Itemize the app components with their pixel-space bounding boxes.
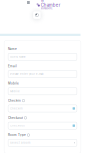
- staticText: THE: [41, 0, 44, 2]
- staticText: Check-in: [10, 107, 23, 110]
- button[interactable]: Mobile: [8, 88, 77, 95]
- staticText: Room Type: [8, 133, 26, 137]
- staticText: Please enter your E-mail: [10, 72, 44, 76]
- button[interactable]: Check-in: [8, 105, 77, 112]
- staticText: Select a room: [10, 141, 30, 144]
- staticText: Name: [8, 47, 17, 51]
- button[interactable]: Guest Name: [8, 53, 77, 60]
- button[interactable]: Select a room: [8, 139, 77, 146]
- button[interactable]: Please enter your E-mail: [8, 70, 77, 78]
- staticText: Chamber: [41, 2, 61, 8]
- staticText: Email: [8, 64, 17, 68]
- staticText: Check-out: [10, 124, 25, 127]
- button[interactable]: Menu: [27, 0, 30, 4]
- staticText: Mobile: [8, 82, 19, 85]
- staticText: Check-out: [8, 116, 23, 120]
- staticText: Guest Name: [10, 55, 26, 58]
- button[interactable]: Check-out: [8, 122, 77, 129]
- staticText: BOUTIQUE HOTEL: [41, 8, 53, 10]
- staticText: Mobile: [10, 90, 20, 93]
- staticText: Check-in: [8, 99, 21, 102]
